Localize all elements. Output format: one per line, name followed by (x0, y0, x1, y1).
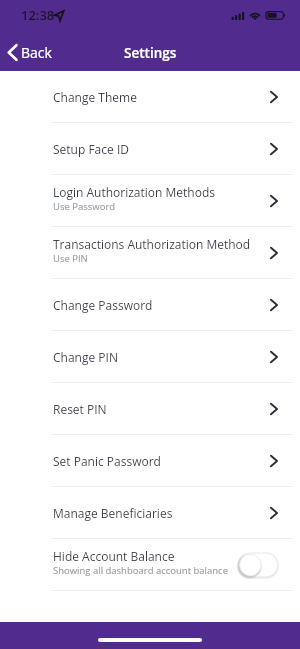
button[interactable]: Manage Beneficiaries (0, 487, 300, 538)
staticText: Setup Face ID (53, 141, 129, 157)
staticText: Change PIN (53, 349, 118, 365)
button[interactable]: Login Authorization Methods (0, 175, 300, 226)
staticText: Manage Beneficiaries (53, 505, 173, 521)
button[interactable]: Back (0, 30, 64, 71)
staticText: Reset PIN (53, 401, 107, 417)
button[interactable]: Change PIN (0, 331, 300, 382)
staticText: Change Theme (53, 89, 137, 105)
staticText: Set Panic Password (53, 453, 161, 469)
staticText: 12:38 (21, 6, 55, 24)
staticText: Hide Account Balance (53, 548, 175, 564)
button[interactable]: Set Panic Password (0, 435, 300, 486)
staticText: Use Password (53, 200, 116, 213)
staticText: Use PIN (53, 252, 88, 265)
staticText: Showing all dashboard account balance (53, 564, 228, 577)
staticText: Back (21, 43, 52, 62)
staticText: Settings (124, 44, 177, 62)
button[interactable]: Change Theme (0, 71, 300, 122)
button[interactable]: Setup Face ID (0, 123, 300, 174)
button[interactable]: Change Password (0, 279, 300, 330)
staticText: Change Password (53, 297, 153, 313)
button[interactable]: Transactions Authorization Method (0, 227, 300, 278)
button[interactable]: Reset PIN (0, 383, 300, 434)
button[interactable]: Hide Account Balance (0, 539, 300, 590)
staticText: Transactions Authorization Method (53, 236, 251, 252)
staticText: Login Authorization Methods (53, 184, 215, 200)
button[interactable]: Hide account balance toggle (238, 553, 278, 577)
